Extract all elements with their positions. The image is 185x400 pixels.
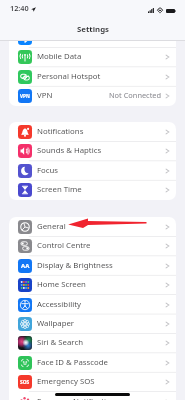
staticText: On [151, 32, 162, 42]
staticText: Sounds & Haptics [37, 145, 165, 156]
staticText: Settings [77, 24, 109, 35]
staticText: SOS [20, 379, 30, 386]
staticText: Personal Hotspot [37, 71, 165, 82]
staticText: Accessibility [37, 299, 165, 310]
button[interactable]: Accessibility [9, 295, 176, 314]
button[interactable]: Mobile Data [9, 47, 176, 66]
staticText: Bluetooth [37, 32, 151, 43]
staticText: VPN [20, 93, 30, 99]
button[interactable]: Wallpaper [9, 314, 176, 333]
staticText: Siri & Search [37, 337, 165, 348]
button[interactable]: AA [9, 256, 176, 275]
staticText: Face ID & Passcode [37, 357, 165, 368]
button[interactable]: Home Screen [9, 275, 176, 294]
button[interactable]: SOS [9, 372, 176, 391]
staticText: Display & Brightness [37, 260, 165, 271]
button[interactable]: Bluetooth [9, 28, 176, 47]
button[interactable]: Siri & Search [9, 333, 176, 352]
staticText: VPN [37, 90, 109, 101]
button[interactable]: Screen Time [9, 180, 176, 199]
button[interactable]: Exposure Notifications [9, 392, 176, 400]
other: Annotation arrow [0, 0, 185, 400]
staticText: Notifications [37, 126, 165, 137]
staticText: Not Connected [109, 90, 162, 100]
staticText: General [37, 221, 165, 232]
staticText: Wallpaper [37, 318, 165, 329]
button[interactable]: Face ID & Passcode [9, 353, 176, 372]
staticText: AA [21, 262, 30, 270]
button[interactable]: General [9, 217, 176, 236]
staticText: Emergency SOS [37, 376, 165, 387]
staticText: Mobile Data [37, 51, 165, 62]
button[interactable]: Control Centre [9, 236, 176, 255]
staticText: 12:40 [10, 3, 29, 13]
staticText: Control Centre [37, 240, 165, 251]
button[interactable]: VPN [9, 86, 176, 105]
button[interactable]: Sounds & Haptics [9, 141, 176, 160]
button[interactable]: Notifications [9, 122, 176, 141]
button[interactable]: Personal Hotspot [9, 67, 176, 86]
button[interactable]: Focus [9, 161, 176, 180]
staticText: Focus [37, 165, 165, 176]
staticText: Exposure Notifications [37, 396, 165, 400]
staticText: Screen Time [37, 184, 165, 195]
staticText: Home Screen [37, 279, 165, 290]
